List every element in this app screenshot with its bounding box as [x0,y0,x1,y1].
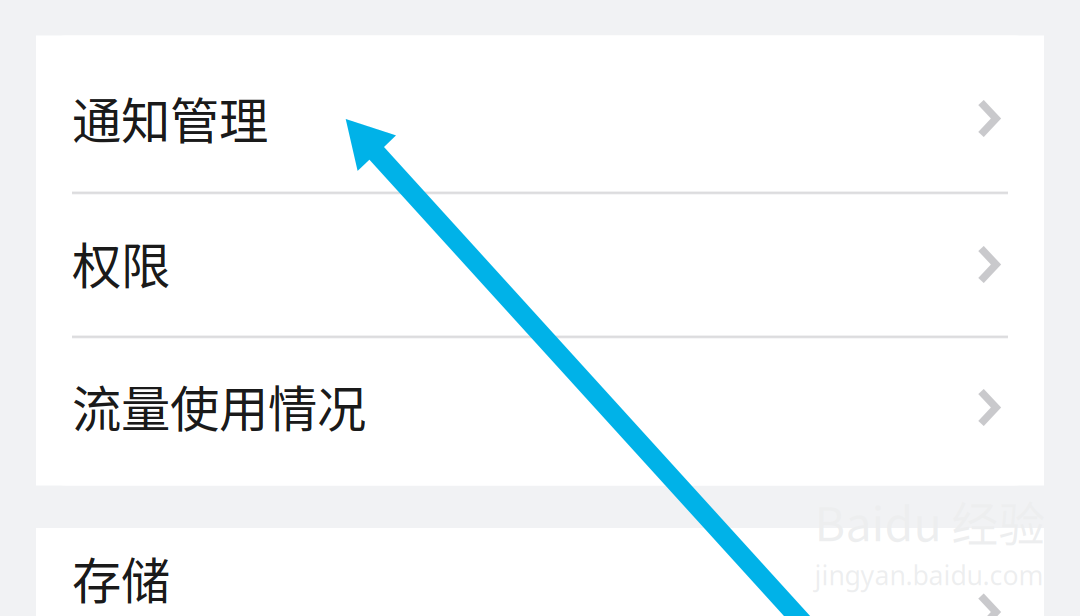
button[interactable]: 通知管理 [36,35,1044,191]
staticText: Baidu 经验 [814,487,1045,555]
staticText: jingyan.baidu.com [814,557,1043,593]
staticText: 流量使用情况 [72,370,366,441]
button[interactable]: 存储 [36,528,1044,616]
button[interactable]: 权限 [36,194,1044,335]
staticText: 存储 [72,542,170,613]
staticText: 权限 [72,227,170,298]
button[interactable]: 流量使用情况 [36,338,1044,485]
staticText: 通知管理 [72,82,268,153]
